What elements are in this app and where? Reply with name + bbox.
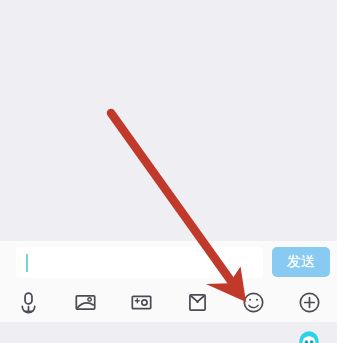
button[interactable]: Send image bbox=[57, 283, 113, 322]
button[interactable]: Send gift bbox=[169, 283, 225, 322]
button[interactable]: 发送 bbox=[272, 247, 330, 277]
button[interactable]: Take photo bbox=[113, 283, 169, 322]
button[interactable]: Emoji bbox=[225, 283, 281, 322]
button[interactable]: Voice message bbox=[0, 283, 57, 322]
button[interactable]: More options bbox=[281, 283, 337, 322]
button[interactable] bbox=[16, 247, 263, 278]
staticText: 发送 bbox=[287, 253, 315, 271]
